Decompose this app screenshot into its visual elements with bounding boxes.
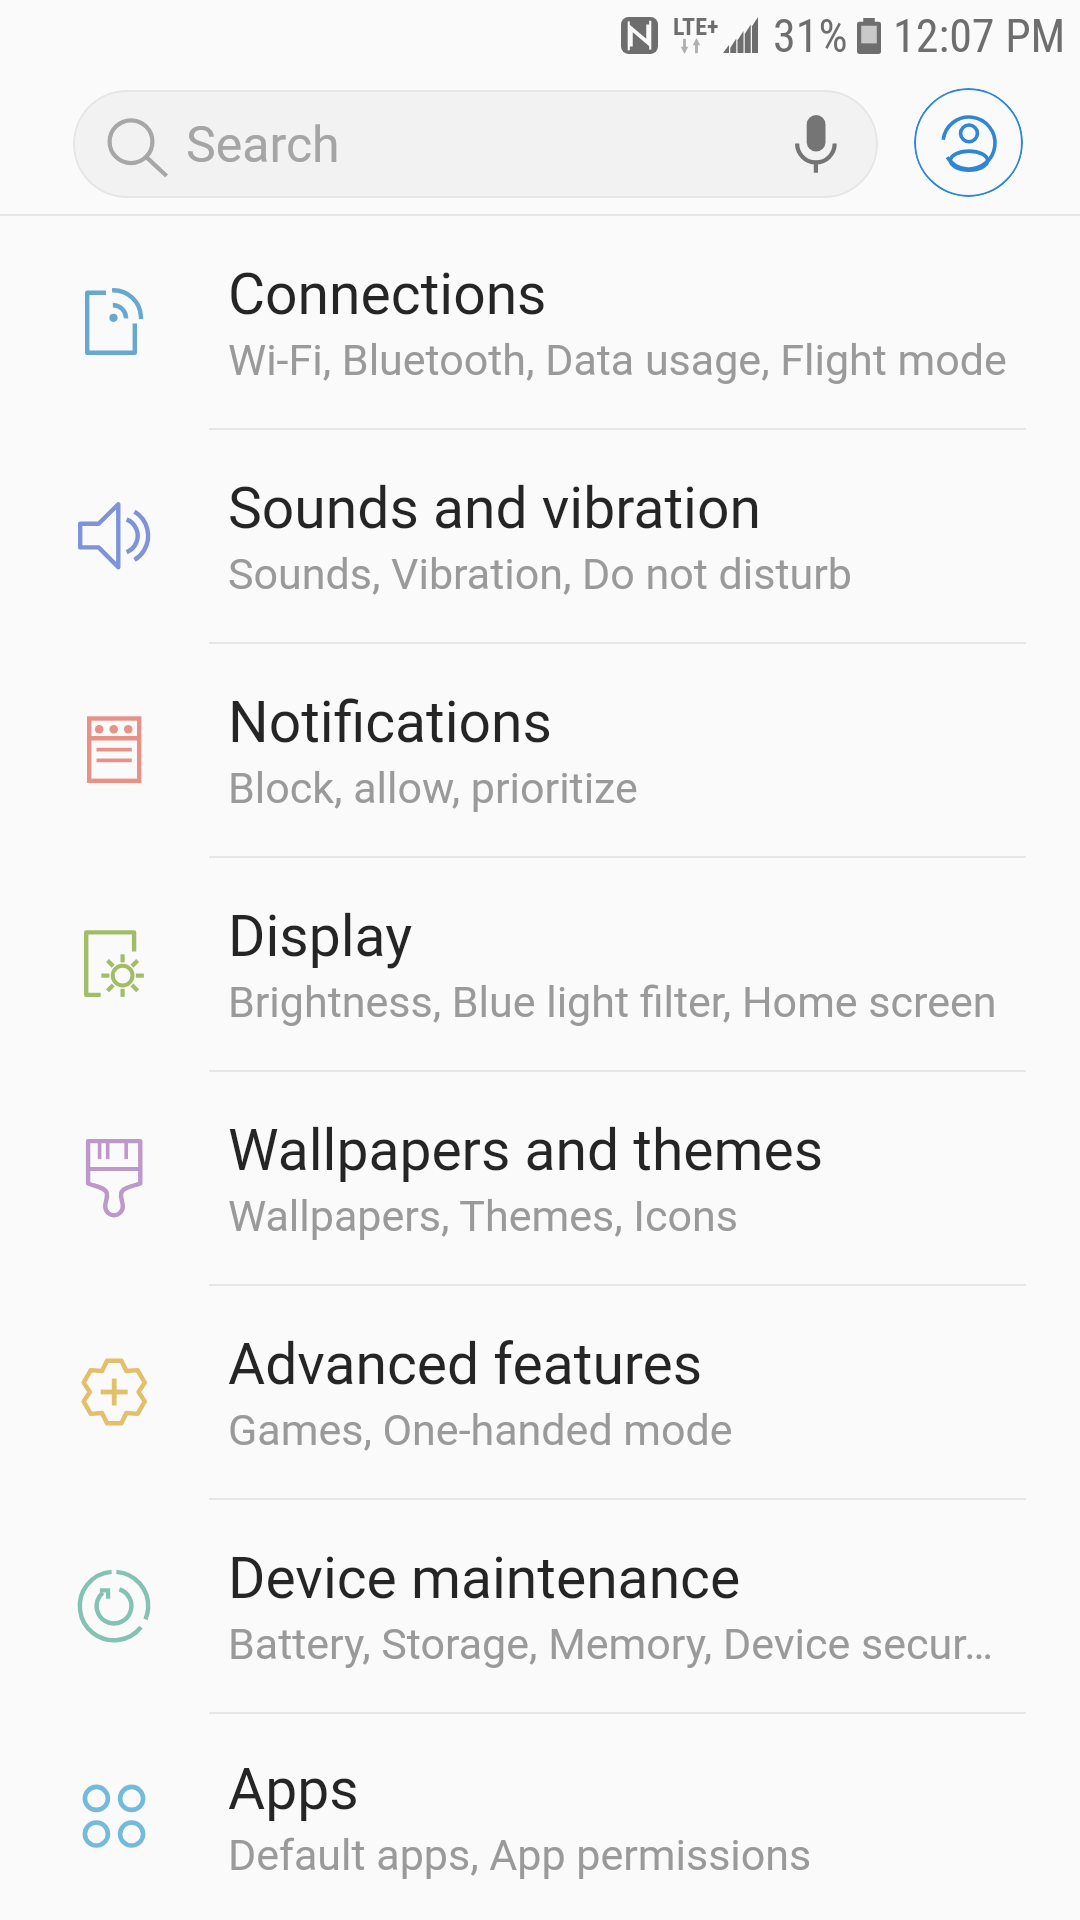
button[interactable]: Apps xyxy=(0,1714,1080,1920)
button[interactable]: Wallpapers and themes xyxy=(0,1072,1080,1284)
staticText: 31% xyxy=(773,9,848,63)
staticText: Wi-Fi, Bluetooth, Data usage, Flight mod… xyxy=(228,335,1007,385)
button[interactable]: Display xyxy=(0,858,1080,1070)
staticText: Wallpapers and themes xyxy=(228,1117,824,1184)
button[interactable]: Advanced features xyxy=(0,1286,1080,1498)
staticText: Brightness, Blue light filter, Home scre… xyxy=(228,977,997,1027)
staticText: LTE+ xyxy=(673,13,719,41)
staticText: Display xyxy=(228,903,413,970)
staticText: Notifications xyxy=(228,689,553,756)
staticText: Games, One-handed mode xyxy=(228,1405,733,1455)
staticText: Sounds and vibration xyxy=(228,475,761,542)
staticText: Connections xyxy=(228,261,547,328)
staticText: Wallpapers, Themes, Icons xyxy=(228,1191,738,1241)
button[interactable]: Device maintenance xyxy=(0,1500,1080,1712)
button[interactable]: Sounds and vibration xyxy=(0,430,1080,642)
staticText: Apps xyxy=(228,1756,359,1823)
button[interactable]: Search xyxy=(73,90,878,198)
button[interactable]: Connections xyxy=(0,216,1080,428)
staticText: Device maintenance xyxy=(228,1545,741,1612)
staticText: Advanced features xyxy=(228,1331,703,1398)
button[interactable]: Account xyxy=(914,88,1023,197)
staticText: Sounds, Vibration, Do not disturb xyxy=(228,549,852,599)
staticText: Search xyxy=(186,116,340,175)
button[interactable]: Notifications xyxy=(0,644,1080,856)
staticText: Block, allow, prioritize xyxy=(228,763,638,813)
staticText: 12:07 PM xyxy=(893,9,1066,63)
staticText: Default apps, App permissions xyxy=(228,1830,812,1880)
staticText: Battery, Storage, Memory, Device secur… xyxy=(228,1619,993,1669)
